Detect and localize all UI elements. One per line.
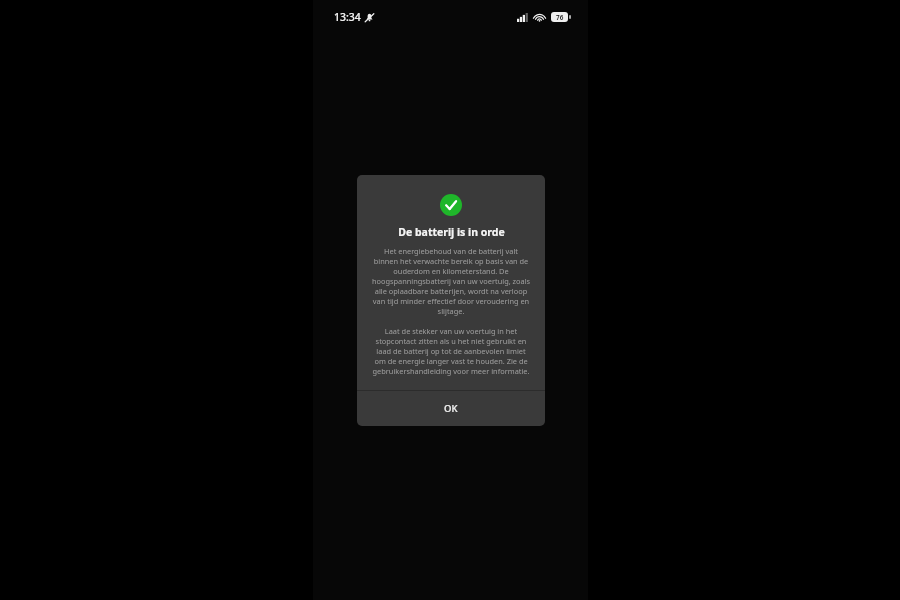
staticText: OK <box>444 402 458 415</box>
staticText: Het energiebehoud van de batterij valt b… <box>371 246 531 316</box>
staticText: 76 <box>556 13 564 22</box>
staticText: Laat de stekker van uw voertuig in het s… <box>371 326 531 376</box>
staticText: De batterij is in orde <box>398 225 505 239</box>
staticText: 13:34 <box>334 10 361 24</box>
button[interactable]: OK <box>357 391 545 426</box>
other: Battery healthy <box>440 194 462 216</box>
